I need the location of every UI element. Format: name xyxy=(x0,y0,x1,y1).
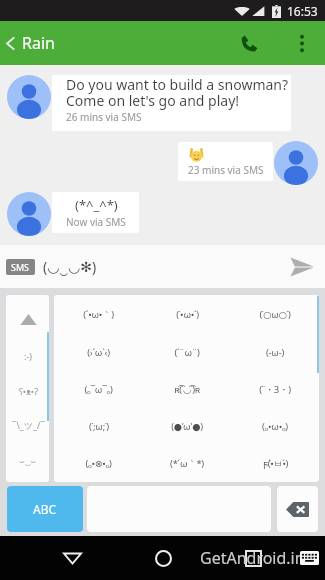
button[interactable]: (˙○ω○˙) xyxy=(231,295,319,333)
button[interactable]: Do you want to build a snowman? Come on … xyxy=(52,75,291,131)
button[interactable]: Send xyxy=(280,245,324,288)
button[interactable]: Backspace xyxy=(277,486,318,532)
button[interactable]: :-) xyxy=(7,343,49,369)
button[interactable]: Recent apps xyxy=(233,538,273,578)
staticText: (●'ω'●) xyxy=(171,420,203,433)
other: Back xyxy=(5,35,16,52)
button[interactable]: ʀ(͡˙◡˙͡)ʀ xyxy=(143,371,231,408)
staticText: SMS xyxy=(11,261,30,273)
button[interactable]: (*^_^*) xyxy=(52,192,139,233)
button[interactable]: ABC xyxy=(7,486,83,532)
staticText: ʕ•ᴥ•ʔ xyxy=(19,385,38,397)
staticText: ⌣‿⌣ xyxy=(19,454,37,466)
staticText: (ₒ¯ω¯ₒ) xyxy=(84,383,113,396)
button[interactable]: ¯\_ツ_/¯ xyxy=(7,412,49,438)
button[interactable]: Switch keyboard xyxy=(299,548,319,568)
button[interactable]: ϝ(•̀ㅂ•́) xyxy=(231,445,319,482)
button[interactable]: Call xyxy=(213,21,285,65)
button[interactable]: ⌣‿⌣ xyxy=(7,447,49,473)
staticText: 26 mins via SMS xyxy=(66,110,142,124)
staticText: Rain xyxy=(22,32,55,54)
button[interactable]: Scroll up xyxy=(7,304,49,334)
button[interactable]: (´¨ω¨) xyxy=(143,333,231,371)
button[interactable]: (ₒ•ω•ₒ) xyxy=(231,408,319,445)
button[interactable]: (˙•ω•´) xyxy=(143,295,231,333)
staticText: (◡‿◡✻) xyxy=(43,257,97,276)
staticText: GetAndroid.in xyxy=(200,547,305,569)
staticText: :-) xyxy=(24,350,33,362)
staticText: ¯\_ツ_/¯ xyxy=(12,419,45,431)
button[interactable]: (›´ωˋ‹) xyxy=(54,333,143,371)
button[interactable]: (˙;ω;˙) xyxy=(54,408,143,445)
button[interactable]: (*´ω｀*) xyxy=(143,445,231,482)
button[interactable]: ʕ•ᴥ•ʔ xyxy=(7,378,49,404)
button[interactable]: (●'ω'●) xyxy=(143,408,231,445)
button[interactable]: (ₒ•⊗•ₒ) xyxy=(54,445,143,482)
staticText: (ₒ•ω•ₒ) xyxy=(262,420,288,433)
staticText: ʀ(͡˙◡˙͡)ʀ xyxy=(174,383,200,396)
button[interactable]: (˙˙・3・) xyxy=(231,371,319,408)
button[interactable]: 23 mins via SMS xyxy=(178,142,273,181)
staticText: Now via SMS xyxy=(66,215,126,229)
staticText: (˙•ω•´) xyxy=(176,308,199,321)
button[interactable]: More options xyxy=(285,21,319,65)
button[interactable]: Back xyxy=(52,538,92,578)
staticText: (˙˙・3・) xyxy=(259,383,291,396)
staticText: 16:53 xyxy=(287,3,318,19)
staticText: (˙○ω○˙) xyxy=(259,308,291,321)
staticText: (´•ω•｀) xyxy=(83,308,114,321)
staticText: Do you want to build a snowman? Come on … xyxy=(66,77,289,109)
button[interactable]: Home xyxy=(143,538,183,578)
staticText: ABC xyxy=(33,501,57,517)
button[interactable]: (ₒ¯ω¯ₒ) xyxy=(54,371,143,408)
staticText: (-ω-) xyxy=(266,346,284,359)
staticText: (›´ωˋ‹) xyxy=(87,346,110,359)
staticText: (*^_^*) xyxy=(75,196,118,214)
staticText: (˙;ω;˙) xyxy=(89,420,109,433)
button[interactable]: Back xyxy=(0,26,61,60)
staticText: (*´ω｀*) xyxy=(170,457,204,470)
button[interactable]: SMS xyxy=(6,259,35,275)
staticText: ϝ(•̀ㅂ•́) xyxy=(263,457,288,470)
staticText: 23 mins via SMS xyxy=(188,163,264,177)
staticText: (ₒ•⊗•ₒ) xyxy=(85,457,112,470)
button[interactable]: (´•ω•｀) xyxy=(54,295,143,333)
button[interactable]: (-ω-) xyxy=(231,333,319,371)
staticText: (´¨ω¨) xyxy=(174,346,200,359)
